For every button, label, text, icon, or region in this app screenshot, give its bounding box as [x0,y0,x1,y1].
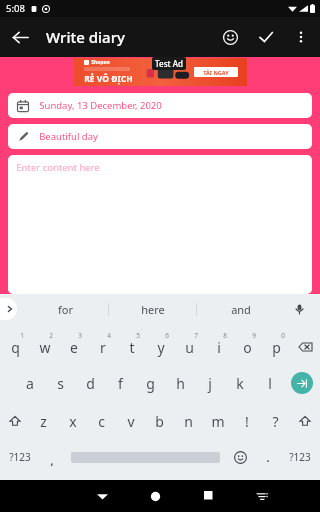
staticText: , [50,453,54,468]
button[interactable]: l [255,364,285,402]
staticText: r [100,338,106,357]
button[interactable]: j [195,364,225,402]
button[interactable]: n [174,402,203,440]
button[interactable]: Back [76,480,129,512]
button[interactable]: m [203,402,232,440]
button[interactable]: 7 [175,326,204,364]
button[interactable]: s [45,364,75,402]
button[interactable]: ?123 [1,440,39,474]
button[interactable]: Emoji [225,440,255,474]
button[interactable]: and [197,294,284,324]
button[interactable]: f [105,364,135,402]
staticText: w [39,338,51,357]
button[interactable]: Enter content here [8,155,312,294]
staticText: RẺ VÔ ĐỊCH [84,73,133,85]
staticText: 4 [107,331,111,340]
button[interactable]: Back [0,17,40,57]
button[interactable]: 5 [117,326,146,364]
staticText: c [98,412,105,431]
button[interactable]: More options [284,20,318,54]
button[interactable]: Comma [39,440,65,474]
staticText: m [211,412,225,431]
button[interactable]: x [58,402,87,440]
staticText: TẢI NGAY [203,69,229,76]
button[interactable]: d [75,364,105,402]
button[interactable]: Advertisement [74,58,247,86]
button[interactable]: ?123 [281,440,319,474]
staticText: Sunday, 13 December, 2020 [39,99,162,112]
staticText: and [231,302,251,317]
staticText: e [70,338,78,357]
button[interactable]: Voice input [288,298,310,320]
button[interactable]: Sunday, 13 December, 2020 [8,93,312,118]
staticText: 1 [20,331,24,340]
staticText: Test Ad [155,58,183,69]
staticText: v [127,412,135,431]
button[interactable]: 8 [204,326,233,364]
button[interactable]: 9 [233,326,262,364]
button[interactable]: a [15,364,45,402]
staticText: h [176,374,185,393]
staticText: t [129,338,135,357]
button[interactable]: v [116,402,145,440]
button[interactable]: 2 [30,326,59,364]
button[interactable]: Backspace [291,326,319,364]
staticText: d [86,374,95,393]
button[interactable]: 6 [146,326,175,364]
staticText: n [184,412,193,431]
button[interactable]: Space [65,440,225,474]
staticText: 8 [223,331,227,340]
button[interactable]: Next field [285,364,319,402]
staticText: ?123 [289,450,311,464]
button[interactable]: Emoji [212,19,248,55]
staticText: g [146,374,155,393]
button[interactable]: 0 [262,326,291,364]
button[interactable]: g [135,364,165,402]
button[interactable]: Beautiful day [8,124,312,149]
staticText: 5 [136,331,140,340]
button[interactable]: b [145,402,174,440]
staticText: j [208,374,212,393]
staticText: u [185,338,194,357]
staticText: ! [245,412,249,431]
staticText: x [69,412,77,431]
staticText: here [141,302,165,317]
staticText: 5:08 [6,2,25,15]
button[interactable]: 4 [88,326,117,364]
button[interactable]: Recent apps [182,480,235,512]
button[interactable]: Home [129,480,182,512]
staticText: k [236,374,244,393]
button[interactable]: k [225,364,255,402]
staticText: y [157,338,165,357]
button[interactable]: Save [248,19,284,55]
button[interactable]: c [87,402,116,440]
button[interactable]: 1 [1,326,30,364]
button[interactable]: ! [232,402,261,440]
staticText: ?123 [9,450,31,464]
button[interactable]: Shift [290,402,319,440]
button[interactable]: Expand toolbar [0,298,17,320]
button[interactable]: 3 [59,326,88,364]
button[interactable]: for [22,294,108,324]
staticText: Enter content here [16,161,100,174]
button[interactable]: h [165,364,195,402]
button[interactable]: Shift [1,402,29,440]
staticText: i [217,338,221,357]
staticText: 9 [252,331,256,340]
staticText: f [118,374,123,393]
staticText: ? [272,412,279,431]
staticText: 7 [194,331,198,340]
staticText: o [243,338,252,357]
staticText: b [155,412,164,431]
button[interactable]: Period [255,440,281,474]
button[interactable]: here [109,294,196,324]
staticText: z [40,412,47,431]
button[interactable]: Switch keyboard [235,480,288,512]
staticText: p [272,338,281,357]
staticText: 3 [78,331,82,340]
button[interactable]: z [29,402,58,440]
staticText: a [26,374,34,393]
staticText: 6 [165,331,169,340]
staticText: Write diary [46,27,125,47]
button[interactable]: ? [261,402,290,440]
